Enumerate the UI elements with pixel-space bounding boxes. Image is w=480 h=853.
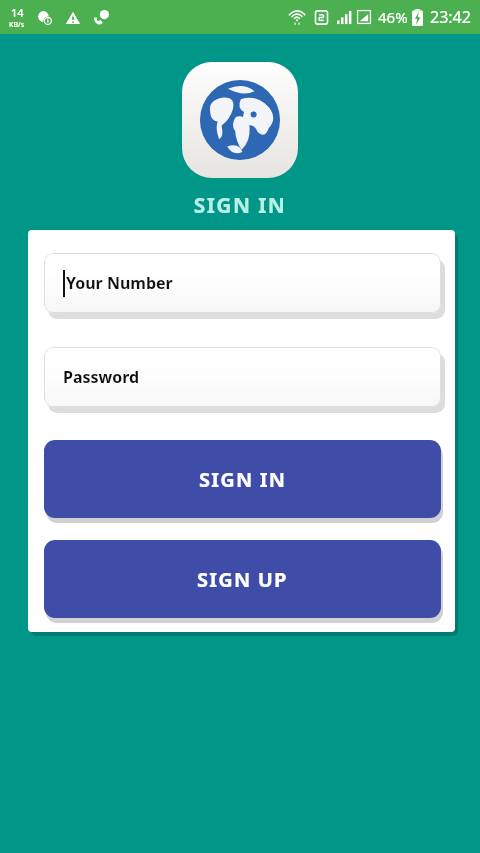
button[interactable]: Your Number <box>44 253 441 319</box>
staticText: 14 <box>11 5 24 20</box>
button[interactable]: SIGN UP <box>44 540 441 618</box>
staticText: Password <box>63 366 140 388</box>
staticText: Your Number <box>66 272 173 294</box>
staticText: SIGN IN <box>199 466 287 493</box>
button[interactable]: Password <box>44 347 441 413</box>
staticText: KB/s <box>9 20 25 30</box>
staticText: SIGN UP <box>197 566 288 593</box>
other: App logo <box>182 62 298 178</box>
staticText: SIGN IN <box>0 191 480 220</box>
button[interactable]: SIGN IN <box>44 440 441 518</box>
staticText: 46% <box>378 7 408 27</box>
staticText: 23:42 <box>430 6 471 28</box>
